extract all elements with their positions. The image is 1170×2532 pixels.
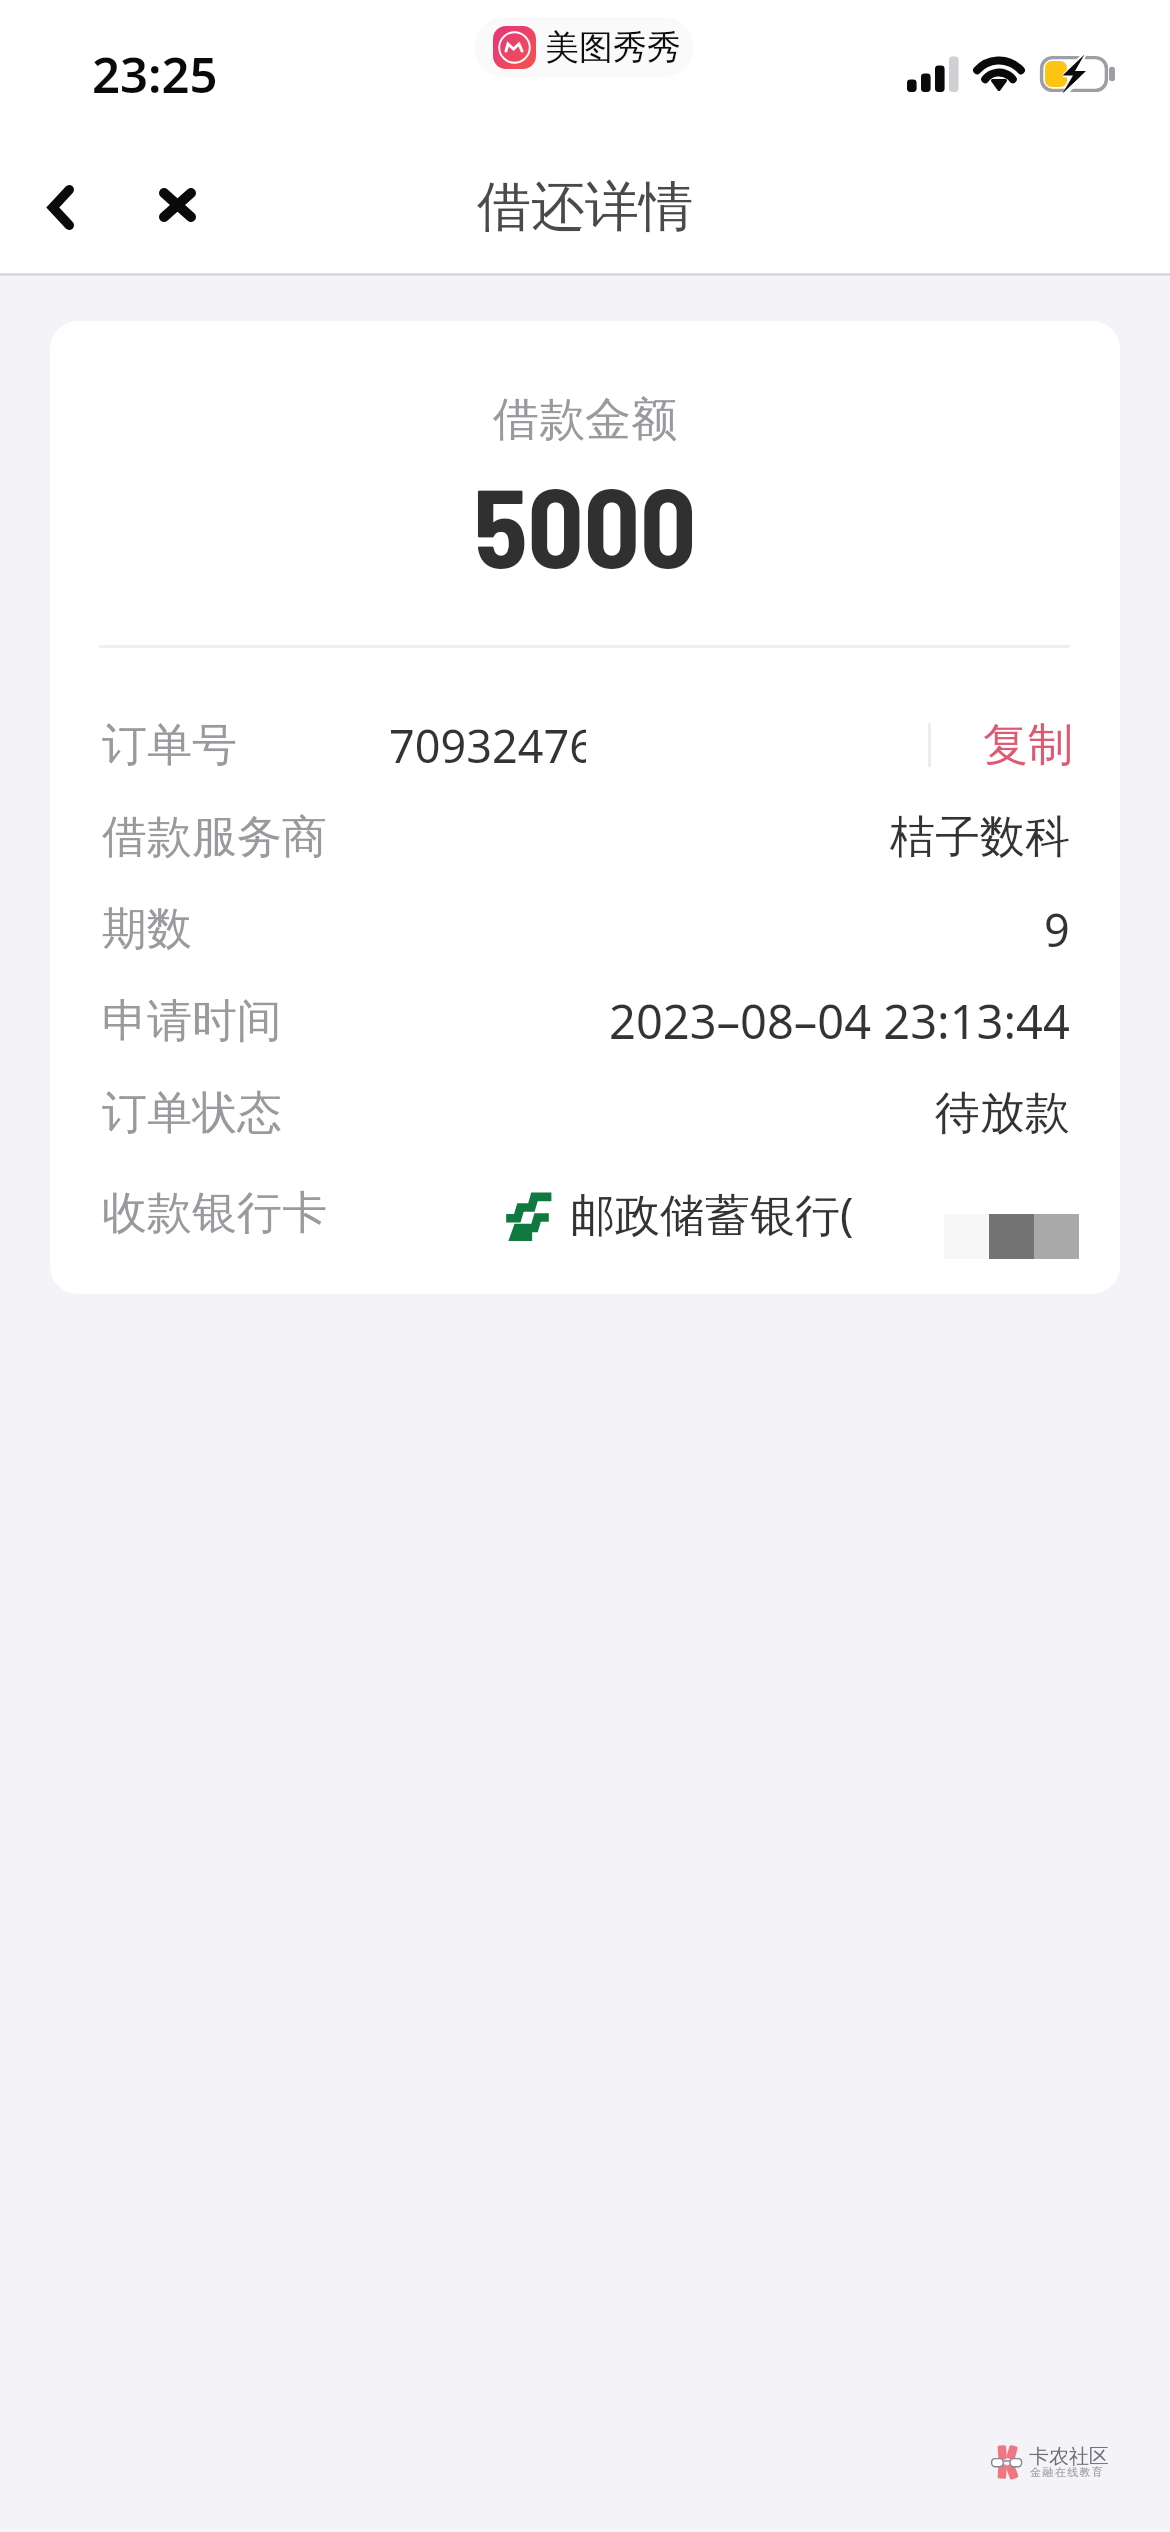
staticText: 美图秀秀 — [545, 26, 681, 69]
button[interactable]: Copy — [948, 698, 1107, 792]
staticText: 申请时间 — [102, 993, 282, 1050]
staticText: 订单状态 — [102, 1085, 282, 1142]
staticText: 23:25 — [92, 41, 218, 108]
staticText: 订单号 — [102, 717, 237, 774]
staticText: 期数 — [102, 901, 192, 958]
staticText: 5000 — [50, 458, 1120, 590]
button[interactable]: Close — [132, 160, 222, 250]
staticText: 2023–08–04 23:13:44 — [609, 989, 1070, 1053]
staticText: 借款金额 — [50, 391, 1120, 449]
staticText: 收款银行卡 — [102, 1185, 327, 1242]
staticText: 70932476 — [389, 715, 586, 776]
staticText: 待放款 — [935, 1085, 1070, 1142]
staticText: 桔子数科 — [890, 809, 1070, 866]
staticText: 9 — [1044, 899, 1070, 960]
button[interactable]: Back — [16, 162, 106, 252]
staticText: 复制 — [983, 717, 1073, 774]
staticText: 邮政储蓄银行( — [570, 1183, 854, 1244]
staticText: 借还详情 — [0, 173, 1170, 241]
staticText: 金融在线教育 — [1030, 2465, 1105, 2479]
staticText: 卡农社区 — [1029, 2444, 1109, 2469]
staticText: 借款服务商 — [102, 809, 327, 866]
